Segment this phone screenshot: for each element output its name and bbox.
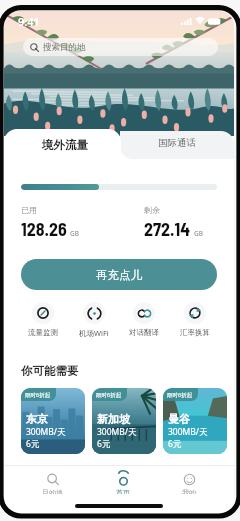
staticText: 国际通话 (158, 137, 196, 149)
button[interactable]: 限时6折起 (92, 388, 156, 454)
staticText: 曼谷 (168, 412, 190, 426)
button[interactable]: 境外流量 (4, 129, 121, 159)
staticText: 9:41 (18, 14, 40, 29)
staticText: 搜索目的地 (43, 42, 86, 53)
staticText: GB (70, 229, 79, 238)
staticText: 6元 (26, 438, 40, 450)
staticText: 300MB/天 (26, 426, 66, 438)
staticText: 6元 (168, 438, 182, 450)
staticText: GB (194, 229, 203, 238)
staticText: 300MB/天 (97, 426, 137, 438)
button[interactable]: Home (102, 471, 144, 496)
button[interactable]: 汇率换算 (177, 301, 213, 338)
staticText: 流量监测 (28, 328, 58, 337)
staticText: 128.26 (21, 218, 67, 240)
button[interactable]: Profile (168, 471, 210, 496)
button[interactable]: 再充点儿 (21, 259, 217, 290)
staticText: 新加坡 (97, 412, 130, 426)
staticText: 对话翻译 (129, 328, 159, 337)
staticText: 境外流量 (42, 138, 88, 152)
button[interactable]: 限时6折起 (163, 388, 227, 454)
button[interactable]: 搜索目的地 (23, 38, 218, 56)
button[interactable]: 国际通话 (120, 131, 234, 159)
button[interactable]: 对话翻译 (126, 301, 162, 338)
staticText: 首页 (116, 488, 130, 494)
button[interactable]: 机场WiFi (76, 301, 112, 339)
staticText: 6元 (97, 438, 111, 450)
staticText: 机场WiFi (79, 328, 109, 338)
staticText: 限时6折起 (167, 391, 193, 399)
staticText: 剩余 (144, 205, 160, 215)
staticText: 你可能需要 (21, 364, 79, 378)
staticText: 272.14 (144, 218, 191, 240)
staticText: 东京 (26, 412, 48, 426)
button[interactable]: 限时6折起 (21, 388, 85, 454)
staticText: 已用 (21, 205, 37, 215)
staticText: 限时6折起 (25, 391, 51, 399)
staticText: 300MB/天 (168, 426, 208, 438)
staticText: 再充点儿 (96, 268, 142, 282)
button[interactable]: Destinations (28, 471, 77, 496)
staticText: 汇率换算 (180, 328, 210, 337)
staticText: 我的 (182, 488, 196, 494)
staticText: 目的地 (42, 488, 63, 494)
button[interactable]: 流量监测 (25, 301, 61, 338)
staticText: 限时6折起 (96, 391, 122, 399)
